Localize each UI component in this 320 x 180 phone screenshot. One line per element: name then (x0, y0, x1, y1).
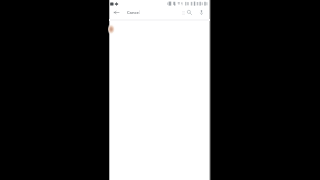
button[interactable]: Cancel (127, 9, 140, 17)
button[interactable]: Back (112, 8, 121, 17)
button[interactable]: Search (185, 8, 194, 17)
button[interactable]: Voice search (197, 8, 206, 17)
staticText: Cancel (127, 10, 140, 16)
